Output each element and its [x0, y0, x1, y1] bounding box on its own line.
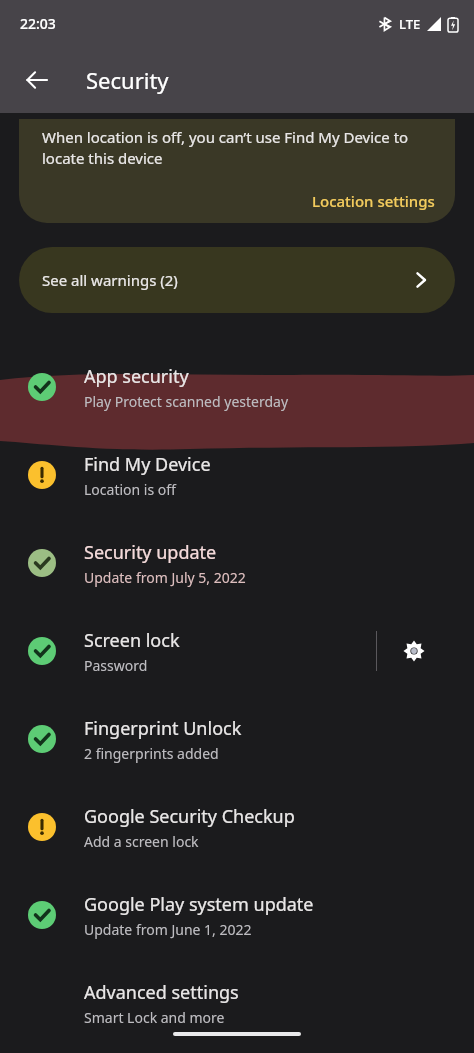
- button[interactable]: Location settings: [300, 183, 447, 219]
- button[interactable]: See all warnings (2): [19, 247, 455, 313]
- button[interactable]: Screen lock settings: [390, 627, 438, 675]
- button[interactable]: Advanced settings: [0, 959, 474, 1047]
- staticText: LTE: [399, 15, 421, 33]
- staticText: Google Security Checkup: [84, 804, 295, 829]
- staticText: Password: [84, 656, 148, 675]
- button[interactable]: Google Play system update: [0, 871, 474, 959]
- staticText: Smart Lock and more: [84, 1008, 225, 1027]
- staticText: Security update: [84, 540, 217, 565]
- staticText: Security: [86, 65, 169, 95]
- staticText: Fingerprint Unlock: [84, 716, 242, 741]
- staticText: Location is off: [84, 480, 176, 499]
- button[interactable]: Screen lock: [0, 607, 474, 695]
- staticText: Advanced settings: [84, 980, 239, 1005]
- button[interactable]: When location is off, you can’t use Find…: [19, 119, 455, 223]
- staticText: 22:03: [20, 14, 56, 33]
- staticText: Location settings: [312, 191, 435, 211]
- staticText: Play Protect scanned yesterday: [84, 392, 289, 411]
- button[interactable]: App security: [0, 343, 474, 431]
- staticText: Screen lock: [84, 628, 180, 653]
- staticText: Add a screen lock: [84, 832, 199, 851]
- staticText: Update from July 5, 2022: [84, 568, 246, 587]
- staticText: Find My Device: [84, 452, 211, 477]
- button[interactable]: Find My Device: [0, 431, 474, 519]
- button[interactable]: Security update: [0, 519, 474, 607]
- button[interactable]: Back: [13, 56, 61, 104]
- staticText: When location is off, you can’t use Find…: [42, 127, 441, 169]
- staticText: 2 fingerprints added: [84, 744, 219, 763]
- staticText: App security: [84, 364, 189, 389]
- staticText: Update from June 1, 2022: [84, 920, 252, 939]
- button[interactable]: Google Security Checkup: [0, 783, 474, 871]
- button[interactable]: Fingerprint Unlock: [0, 695, 474, 783]
- staticText: Google Play system update: [84, 892, 314, 917]
- staticText: See all warnings (2): [42, 270, 178, 290]
